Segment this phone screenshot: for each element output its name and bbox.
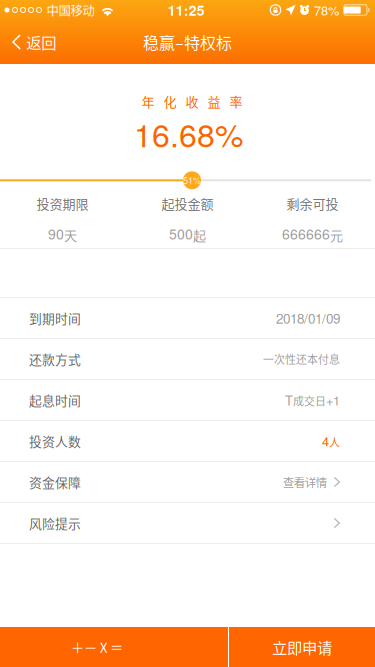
button[interactable]: 投资人数 — [0, 421, 375, 462]
staticText: 16.68% — [134, 111, 243, 156]
staticText: 51% — [183, 174, 201, 187]
button[interactable]: 风险提示 — [0, 503, 375, 544]
staticText: 查看详情 — [283, 474, 327, 490]
staticText: T成交日+1 — [285, 391, 340, 409]
staticText: 一次性还本付息 — [263, 351, 340, 367]
staticText: 立即申请 — [272, 636, 332, 658]
staticText: 风险提示 — [29, 514, 81, 532]
staticText: 投资人数 — [29, 432, 81, 450]
staticText: 666666元 — [282, 224, 343, 244]
button[interactable]: 还款方式 — [0, 339, 375, 380]
button[interactable]: 起息时间 — [0, 380, 375, 421]
staticText: 稳赢–特权标 — [143, 30, 232, 54]
staticText: 起投金额 — [161, 194, 213, 213]
staticText: 到期时间 — [29, 309, 81, 327]
staticText: 资金保障 — [29, 473, 81, 491]
staticText: 剩余可投 — [286, 194, 338, 213]
button[interactable]: ＋－Ⅹ＝ — [0, 627, 228, 667]
staticText: 还款方式 — [29, 350, 81, 368]
staticText: 4人 — [322, 432, 340, 450]
staticText: 投资期限 — [36, 194, 88, 213]
button[interactable]: 返回 — [0, 20, 68, 64]
staticText: 年化收益率 — [141, 91, 242, 110]
staticText: 中国移动 — [46, 1, 94, 19]
staticText: 起息时间 — [29, 391, 81, 409]
button[interactable]: 到期时间 — [0, 298, 375, 339]
staticText: 78% — [314, 1, 339, 19]
staticText: 返回 — [26, 31, 56, 53]
button[interactable]: 立即申请 — [229, 627, 375, 667]
staticText: 90天 — [48, 224, 77, 244]
staticText: 2018/01/09 — [276, 308, 340, 328]
staticText: 11:25 — [168, 0, 205, 20]
staticText: 500起 — [169, 224, 206, 244]
staticText: ＋－Ⅹ＝ — [71, 637, 123, 657]
button[interactable]: 资金保障 — [0, 462, 375, 503]
